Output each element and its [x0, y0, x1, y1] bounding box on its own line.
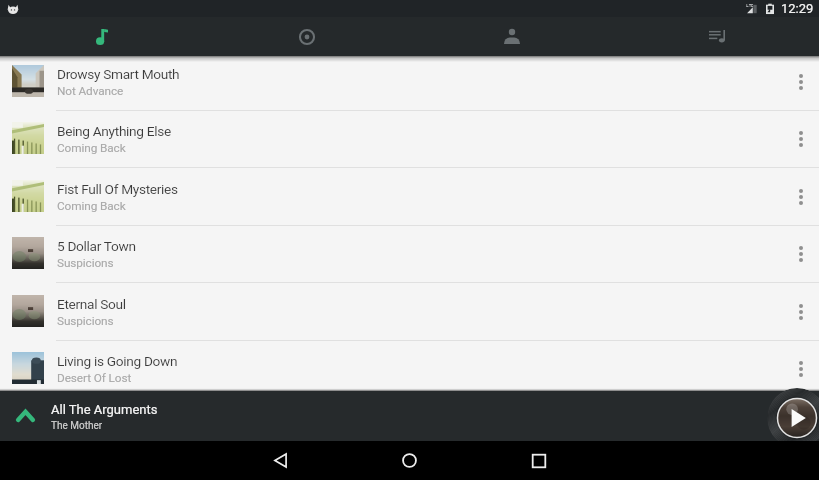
button[interactable]: Being Anything Else — [0, 110, 819, 168]
staticText: Fist Full Of Mysteries — [57, 181, 178, 197]
button[interactable]: Recent apps — [507, 441, 571, 480]
button[interactable]: Expand player — [0, 391, 819, 441]
staticText: Being Anything Else — [57, 123, 171, 139]
staticText: Desert Of Lost — [57, 371, 132, 385]
button[interactable]: 5 Dollar Town — [0, 225, 819, 283]
button[interactable]: Songs — [0, 17, 204, 56]
button[interactable]: Back — [248, 441, 312, 480]
staticText: The Mother — [51, 420, 103, 432]
staticText: Suspicions — [57, 256, 114, 270]
button[interactable]: Artists — [409, 17, 614, 56]
other: Expand player — [0, 391, 51, 441]
button[interactable]: More options — [783, 340, 819, 391]
staticText: Coming Back — [57, 141, 126, 155]
staticText: Coming Back — [57, 199, 126, 213]
button[interactable]: Eternal Soul — [0, 283, 819, 341]
staticText: All The Arguments — [51, 402, 158, 417]
button[interactable]: More options — [783, 168, 819, 225]
button[interactable]: Drowsy Smart Mouth — [0, 56, 819, 111]
button[interactable]: Play — [767, 388, 819, 441]
staticText: Suspicions — [57, 314, 114, 328]
button[interactable]: Playlists — [614, 17, 819, 56]
button[interactable]: More options — [783, 225, 819, 282]
staticText: 12:29 — [781, 1, 814, 16]
button[interactable]: Home — [377, 441, 441, 480]
button[interactable]: More options — [783, 283, 819, 340]
button[interactable]: Living is Going Down — [0, 340, 819, 391]
staticText: Drowsy Smart Mouth — [57, 66, 180, 82]
staticText: 5 Dollar Town — [57, 238, 136, 254]
button[interactable]: Fist Full Of Mysteries — [0, 168, 819, 226]
staticText: Living is Going Down — [57, 353, 178, 369]
staticText: Not Advance — [57, 84, 124, 98]
button[interactable]: More options — [783, 110, 819, 167]
button[interactable]: More options — [783, 56, 819, 110]
button[interactable]: Albums — [204, 17, 409, 56]
staticText: Eternal Soul — [57, 296, 126, 312]
